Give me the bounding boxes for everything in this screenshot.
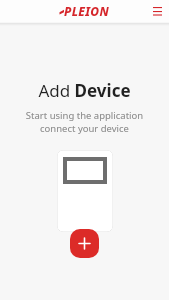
staticText: PLEION [64,3,110,19]
button[interactable]: Menu [150,4,164,18]
staticText: Add Device [0,79,169,102]
staticText: Start using the application connect your… [0,109,169,135]
button[interactable]: Add device [70,229,99,258]
button[interactable]: Device placeholder [57,150,113,232]
